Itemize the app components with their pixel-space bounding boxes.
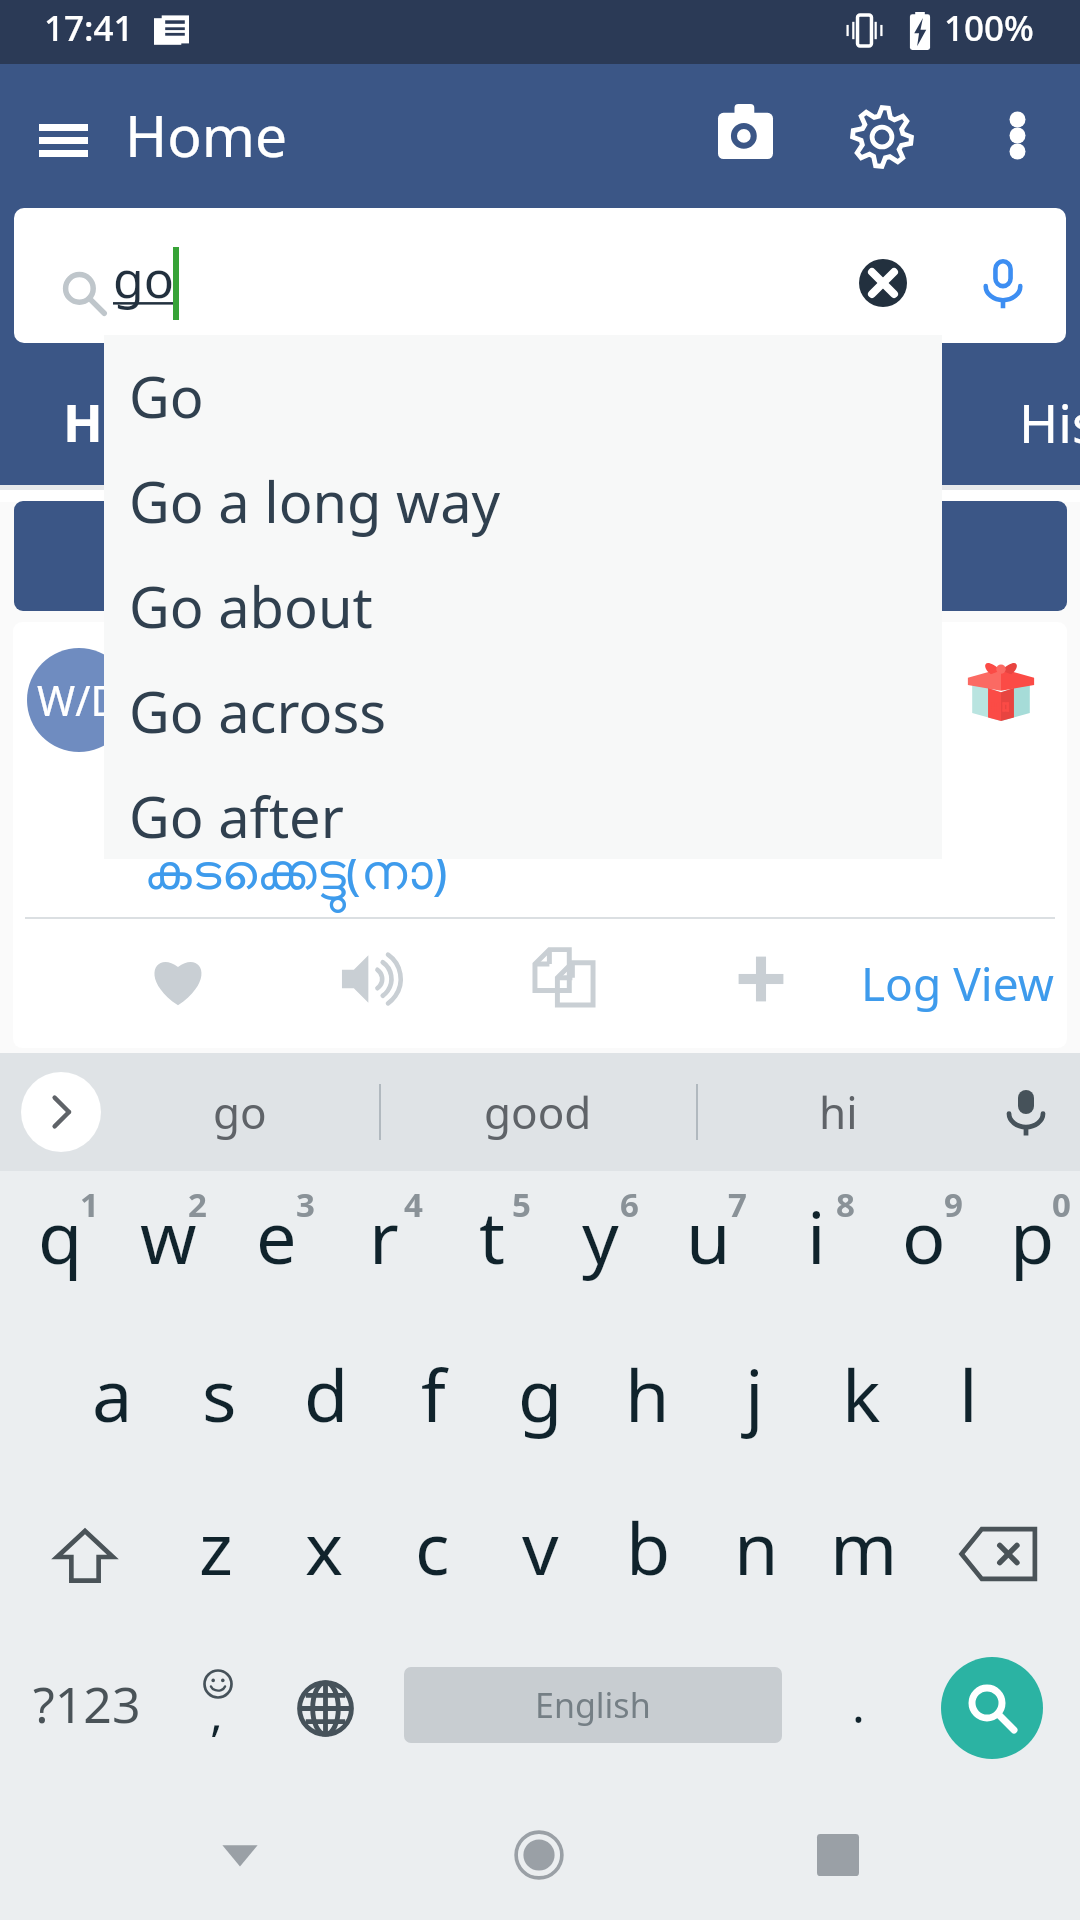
button[interactable]: Go a long way: [104, 448, 942, 553]
button[interactable]: q: [0, 1171, 108, 1324]
staticText: W/D: [37, 672, 121, 728]
button[interactable]: Go after: [104, 763, 942, 868]
staticText: Go across: [129, 673, 387, 749]
button[interactable]: More suggestions: [21, 1072, 101, 1152]
button[interactable]: n: [702, 1477, 810, 1630]
staticText: Go about: [129, 568, 373, 644]
button[interactable]: m: [810, 1477, 918, 1630]
button[interactable]: Recents: [788, 1805, 888, 1905]
staticText: s: [202, 1345, 237, 1443]
staticText: l: [959, 1345, 978, 1443]
button[interactable]: Log View: [858, 935, 1056, 1031]
staticText: x: [305, 1498, 344, 1596]
button[interactable]: g: [487, 1324, 594, 1477]
staticText: b: [626, 1498, 671, 1596]
button[interactable]: Settings: [834, 87, 930, 183]
button[interactable]: Camera search: [697, 87, 793, 183]
button[interactable]: k: [808, 1324, 915, 1477]
staticText: a: [92, 1345, 133, 1443]
staticText: j: [745, 1345, 764, 1443]
staticText: 2: [188, 1182, 207, 1227]
button[interactable]: Voice input: [981, 1067, 1071, 1157]
staticText: 8: [836, 1182, 855, 1227]
button[interactable]: w: [108, 1171, 216, 1324]
button[interactable]: Open navigation menu: [18, 87, 114, 183]
button[interactable]: l: [915, 1324, 1022, 1477]
staticText: h: [625, 1345, 670, 1443]
staticText: w: [140, 1187, 197, 1285]
staticText: go: [213, 1082, 267, 1142]
button[interactable]: go: [14, 208, 1066, 343]
button[interactable]: good: [400, 1053, 676, 1171]
button[interactable]: Go about: [104, 553, 942, 658]
staticText: hi: [819, 1082, 858, 1142]
staticText: 4: [404, 1182, 423, 1227]
staticText: 5: [512, 1182, 531, 1227]
button[interactable]: [14, 501, 1067, 611]
button[interactable]: Go across: [104, 658, 942, 763]
staticText: t: [479, 1187, 505, 1285]
staticText: History: [1019, 386, 1080, 458]
staticText: q: [38, 1187, 83, 1285]
button[interactable]: go: [110, 1053, 370, 1171]
button[interactable]: Search: [941, 1657, 1043, 1759]
button[interactable]: Advertisement: [965, 649, 1037, 721]
button[interactable]: i: [756, 1171, 864, 1324]
button[interactable]: Shift: [0, 1477, 162, 1630]
button[interactable]: s: [166, 1324, 273, 1477]
button[interactable]: .: [808, 1630, 908, 1783]
button[interactable]: u: [648, 1171, 756, 1324]
button[interactable]: z: [162, 1477, 270, 1630]
button[interactable]: ?123: [0, 1630, 170, 1783]
staticText: z: [199, 1498, 233, 1596]
button[interactable]: o: [864, 1171, 972, 1324]
staticText: 6: [620, 1182, 639, 1227]
staticText: 1: [80, 1182, 99, 1227]
button[interactable]: hi: [715, 1053, 961, 1171]
staticText: u: [686, 1187, 731, 1285]
staticText: go: [113, 245, 174, 313]
staticText: .: [852, 1672, 865, 1737]
button[interactable]: v: [486, 1477, 594, 1630]
button[interactable]: e: [216, 1171, 324, 1324]
button[interactable]: Go: [104, 343, 942, 448]
button[interactable]: History: [1019, 351, 1080, 493]
button[interactable]: d: [273, 1324, 380, 1477]
staticText: e: [256, 1187, 297, 1285]
button[interactable]: Copy: [516, 928, 612, 1024]
button[interactable]: Voice search: [958, 239, 1048, 329]
staticText: k: [842, 1345, 881, 1443]
button[interactable]: p: [972, 1171, 1080, 1324]
button[interactable]: Backspace: [918, 1477, 1080, 1630]
button[interactable]: Favourite: [130, 933, 226, 1029]
button[interactable]: Clear search: [838, 238, 928, 328]
staticText: 100%: [944, 4, 1034, 52]
staticText: m: [830, 1498, 898, 1596]
button[interactable]: Home: [5, 350, 275, 492]
button[interactable]: b: [594, 1477, 702, 1630]
button[interactable]: Speak: [323, 931, 419, 1027]
button[interactable]: Change language: [270, 1630, 380, 1783]
staticText: 0: [1052, 1182, 1071, 1227]
button[interactable]: More options: [969, 87, 1065, 183]
staticText: Home: [63, 386, 218, 457]
button[interactable]: English: [404, 1667, 782, 1743]
button[interactable]: r: [324, 1171, 432, 1324]
staticText: p: [1010, 1187, 1055, 1285]
button[interactable]: y: [540, 1171, 648, 1324]
button[interactable]: Home: [489, 1805, 589, 1905]
button[interactable]: c: [378, 1477, 486, 1630]
button[interactable]: Add: [713, 931, 809, 1027]
staticText: f: [421, 1345, 446, 1443]
button[interactable]: ,: [170, 1630, 266, 1783]
staticText: i: [807, 1187, 826, 1285]
button[interactable]: j: [701, 1324, 808, 1477]
button[interactable]: h: [594, 1324, 701, 1477]
staticText: Go after: [129, 778, 344, 854]
staticText: 17:41: [44, 4, 134, 52]
button[interactable]: Back: [190, 1805, 290, 1905]
button[interactable]: t: [432, 1171, 540, 1324]
button[interactable]: x: [270, 1477, 378, 1630]
button[interactable]: a: [58, 1324, 166, 1477]
button[interactable]: f: [380, 1324, 487, 1477]
